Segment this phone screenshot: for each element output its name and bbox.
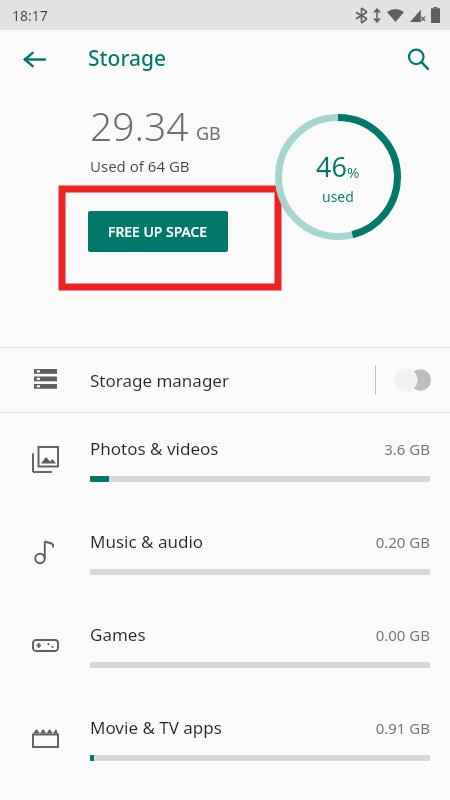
staticText: Photos & videos bbox=[90, 437, 384, 460]
staticText: 0.20 GB bbox=[375, 532, 430, 552]
button[interactable]: FREE UP SPACE bbox=[88, 211, 228, 252]
button[interactable]: Games bbox=[0, 599, 450, 692]
staticText: 0.00 GB bbox=[375, 625, 430, 645]
staticText: Music & audio bbox=[90, 530, 375, 553]
staticText: Used of 64 GB bbox=[90, 156, 190, 176]
button[interactable]: Music & audio bbox=[0, 506, 450, 599]
staticText: used bbox=[322, 187, 354, 206]
staticText: 46 bbox=[316, 148, 347, 185]
staticText: Movie & TV apps bbox=[90, 716, 375, 739]
staticText: 3.6 GB bbox=[384, 439, 430, 459]
staticText: Storage bbox=[88, 44, 166, 73]
button[interactable]: Search bbox=[396, 37, 440, 81]
button[interactable]: Back bbox=[12, 37, 56, 81]
staticText: 18:17 bbox=[12, 6, 48, 25]
staticText: GB bbox=[196, 121, 221, 146]
staticText: 0.91 GB bbox=[375, 718, 430, 738]
staticText: Games bbox=[90, 623, 375, 646]
button[interactable]: Storage manager bbox=[0, 348, 450, 412]
button[interactable]: Movie & TV apps bbox=[0, 692, 450, 785]
staticText: Storage manager bbox=[90, 369, 375, 392]
staticText: FREE UP SPACE bbox=[108, 222, 208, 241]
button[interactable]: Storage manager toggle bbox=[376, 348, 450, 412]
button[interactable]: Photos & videos bbox=[0, 413, 450, 506]
staticText: 29.34 bbox=[90, 99, 189, 152]
staticText: % bbox=[347, 162, 360, 182]
